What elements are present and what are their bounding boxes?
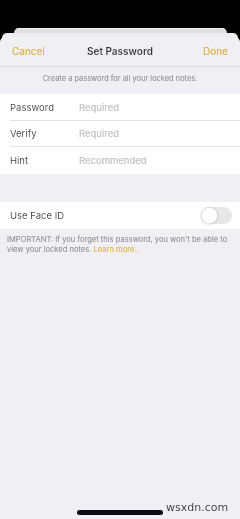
staticText: Required <box>79 128 120 139</box>
button[interactable]: Done <box>191 39 240 63</box>
staticText: Verify <box>10 128 37 139</box>
staticText: Cancel <box>12 45 45 57</box>
button[interactable]: Hint <box>0 146 240 174</box>
button[interactable]: Use Face ID <box>0 202 240 229</box>
staticText: Password <box>10 102 54 113</box>
staticText: Recommended <box>79 155 147 166</box>
button[interactable]: Verify <box>0 120 240 146</box>
staticText: Use Face ID <box>10 210 65 221</box>
staticText: Done <box>203 45 228 57</box>
staticText: Create a password for all your locked no… <box>0 74 240 83</box>
staticText: wsxdn.com <box>166 501 229 514</box>
staticText: Hint <box>10 155 29 166</box>
staticText: Required <box>79 102 120 113</box>
button[interactable]: Cancel <box>0 39 57 63</box>
button[interactable]: Password <box>0 94 240 120</box>
staticText: IMPORTANT: If you forget this password, … <box>7 235 229 254</box>
button[interactable]: Use Face ID toggle, off <box>201 207 232 224</box>
staticText: Set Password <box>87 45 153 57</box>
